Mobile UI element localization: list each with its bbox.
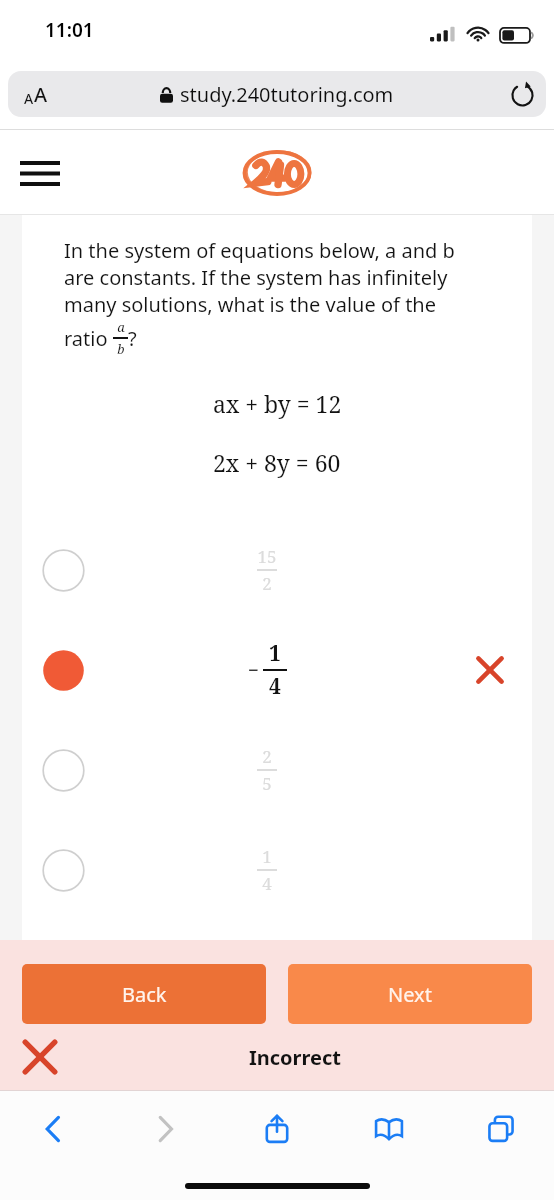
staticText: are constants. If the system has infinit… [64, 264, 448, 291]
button[interactable]: Back [22, 964, 266, 1024]
staticText: 2x + 8y = 60 [213, 447, 341, 478]
staticText: 2 [262, 572, 272, 595]
button[interactable]: Reload page [502, 74, 542, 114]
button[interactable]: 2 [22, 720, 532, 820]
button[interactable]: Open menu [14, 151, 66, 195]
button[interactable]: Bookmarks [360, 1100, 418, 1158]
button[interactable]: Tabs [472, 1100, 530, 1158]
staticText: Next [388, 981, 432, 1008]
staticText: ratio [64, 325, 113, 352]
staticText: many solutions, what is the value of the [64, 291, 436, 318]
button[interactable]: 15 [22, 520, 532, 620]
staticText: Back [122, 981, 167, 1008]
button[interactable]: Back [24, 1100, 82, 1158]
staticText: − [248, 657, 260, 683]
button[interactable]: Next [288, 964, 532, 1024]
staticText: a [117, 318, 125, 336]
button[interactable]: study.240tutoring.com [160, 81, 394, 108]
staticText: 11:01 [45, 17, 94, 43]
button[interactable]: 240 Tutoring home [227, 138, 327, 208]
staticText: 4 [262, 872, 272, 895]
staticText: 1 [262, 845, 272, 868]
staticText: A [34, 81, 48, 108]
staticText: study.240tutoring.com [180, 81, 394, 108]
button[interactable]: Forward [136, 1100, 194, 1158]
button[interactable]: − [22, 620, 532, 720]
staticText: b [117, 340, 125, 358]
staticText: ax + by = 12 [213, 388, 342, 419]
staticText: 4 [269, 672, 281, 701]
button[interactable]: 1 [22, 820, 532, 920]
staticText: 1 [269, 639, 281, 668]
staticText: ? [128, 325, 137, 352]
staticText: 2 [262, 745, 272, 768]
staticText: 15 [257, 545, 277, 568]
button[interactable]: Text size options [20, 77, 52, 112]
staticText: Incorrect [249, 1044, 342, 1071]
staticText: 5 [262, 772, 272, 795]
staticText: A [24, 89, 34, 108]
button[interactable]: Share [248, 1100, 306, 1158]
staticText: In the system of equations below, a and … [64, 237, 455, 264]
